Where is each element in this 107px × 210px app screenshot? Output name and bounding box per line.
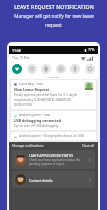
staticText: Kindly approve personal leave for 2-3 da… xyxy=(14,93,78,97)
staticText: Leave App xyxy=(19,82,34,86)
button[interactable]: Manage notifications xyxy=(12,144,44,148)
staticText: USB debugging connected xyxy=(14,118,61,123)
button[interactable]: Android system • Charging this device vi… xyxy=(11,132,96,140)
button[interactable]: Flashlight xyxy=(70,64,80,74)
button[interactable]: Contact details xyxy=(12,171,95,188)
staticText: • now xyxy=(35,82,43,86)
staticText: Tap to turn off USB debugging xyxy=(14,124,59,128)
staticText: LEAVE APPLICATION STATUS xyxy=(29,153,73,157)
staticText: New Leave Request xyxy=(14,87,50,92)
staticText: Android system xyxy=(19,113,41,117)
button[interactable]: Android system xyxy=(11,111,96,130)
staticText: DEVELOPER) xyxy=(14,103,32,107)
staticText: request xyxy=(45,22,62,29)
button[interactable]: Wi-Fi xyxy=(12,64,22,74)
staticText: Thu, 10 Mar xyxy=(12,56,30,60)
staticText: LEAVE REQUEST NOTIFICATION xyxy=(14,3,94,10)
staticText: Clear all xyxy=(82,144,95,148)
button[interactable]: Clear all xyxy=(82,144,95,148)
staticText: 77% xyxy=(88,48,95,52)
button[interactable]: Bluetooth xyxy=(41,64,51,74)
button[interactable]: Do not disturb xyxy=(56,64,66,74)
staticText: Manager will get notify for new leave xyxy=(14,13,94,20)
other: Open xyxy=(88,178,92,182)
other: Open xyxy=(88,158,92,162)
staticText: Check your leave application status like… xyxy=(29,158,81,166)
staticText: 11:08 xyxy=(12,48,21,53)
button[interactable]: Auto rotate xyxy=(85,64,95,74)
button[interactable]: Leave App xyxy=(11,80,96,109)
staticText: Android system • Charging this device vi… xyxy=(19,134,84,138)
staticText: Contact details xyxy=(29,178,53,182)
staticText: requested by TUSHAR PATEL (ANDROID xyxy=(14,98,71,102)
button[interactable]: LEAVE APPLICATION STATUS xyxy=(12,150,95,169)
button[interactable]: Mobile data xyxy=(27,64,37,74)
staticText: • now xyxy=(42,113,50,117)
staticText: Manage notifications xyxy=(12,144,44,148)
